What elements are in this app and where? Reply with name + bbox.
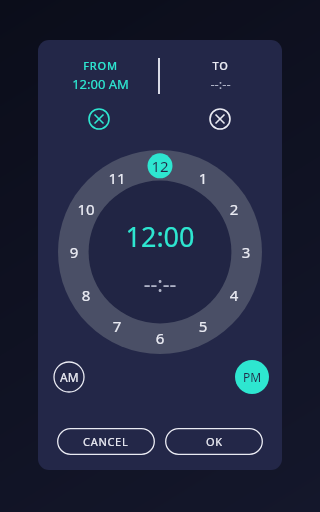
staticText: 7 <box>103 316 131 336</box>
staticText: 12:00 AM <box>48 75 153 93</box>
staticText: 6 <box>146 328 174 348</box>
staticText: 9 <box>60 242 88 262</box>
staticText: 1 <box>189 168 217 188</box>
button[interactable]: CANCEL <box>57 428 155 455</box>
staticText: 12 <box>146 156 174 176</box>
staticText: 3 <box>232 242 260 262</box>
staticText: CANCEL <box>83 434 129 449</box>
button[interactable]: FROM <box>48 58 153 120</box>
staticText: --:-- <box>58 270 262 296</box>
staticText: 12:00 <box>58 218 262 252</box>
staticText: 2 <box>220 199 248 219</box>
staticText: 8 <box>72 285 100 305</box>
staticText: FROM <box>48 58 153 74</box>
button[interactable]: Clear from time <box>88 108 110 130</box>
button[interactable]: 1 <box>58 150 262 354</box>
button[interactable]: TO <box>168 58 273 120</box>
staticText: OK <box>206 434 223 449</box>
button[interactable]: AM <box>53 361 85 393</box>
staticText: 5 <box>189 316 217 336</box>
button[interactable]: OK <box>165 428 263 455</box>
staticText: 4 <box>220 285 248 305</box>
staticText: 11 <box>103 168 131 188</box>
button[interactable]: Clear to time <box>209 108 231 130</box>
staticText: --:-- <box>168 75 273 93</box>
staticText: PM <box>243 369 262 385</box>
staticText: TO <box>168 58 273 74</box>
staticText: 10 <box>72 199 100 219</box>
button[interactable]: PM <box>235 360 269 394</box>
staticText: AM <box>60 369 79 385</box>
